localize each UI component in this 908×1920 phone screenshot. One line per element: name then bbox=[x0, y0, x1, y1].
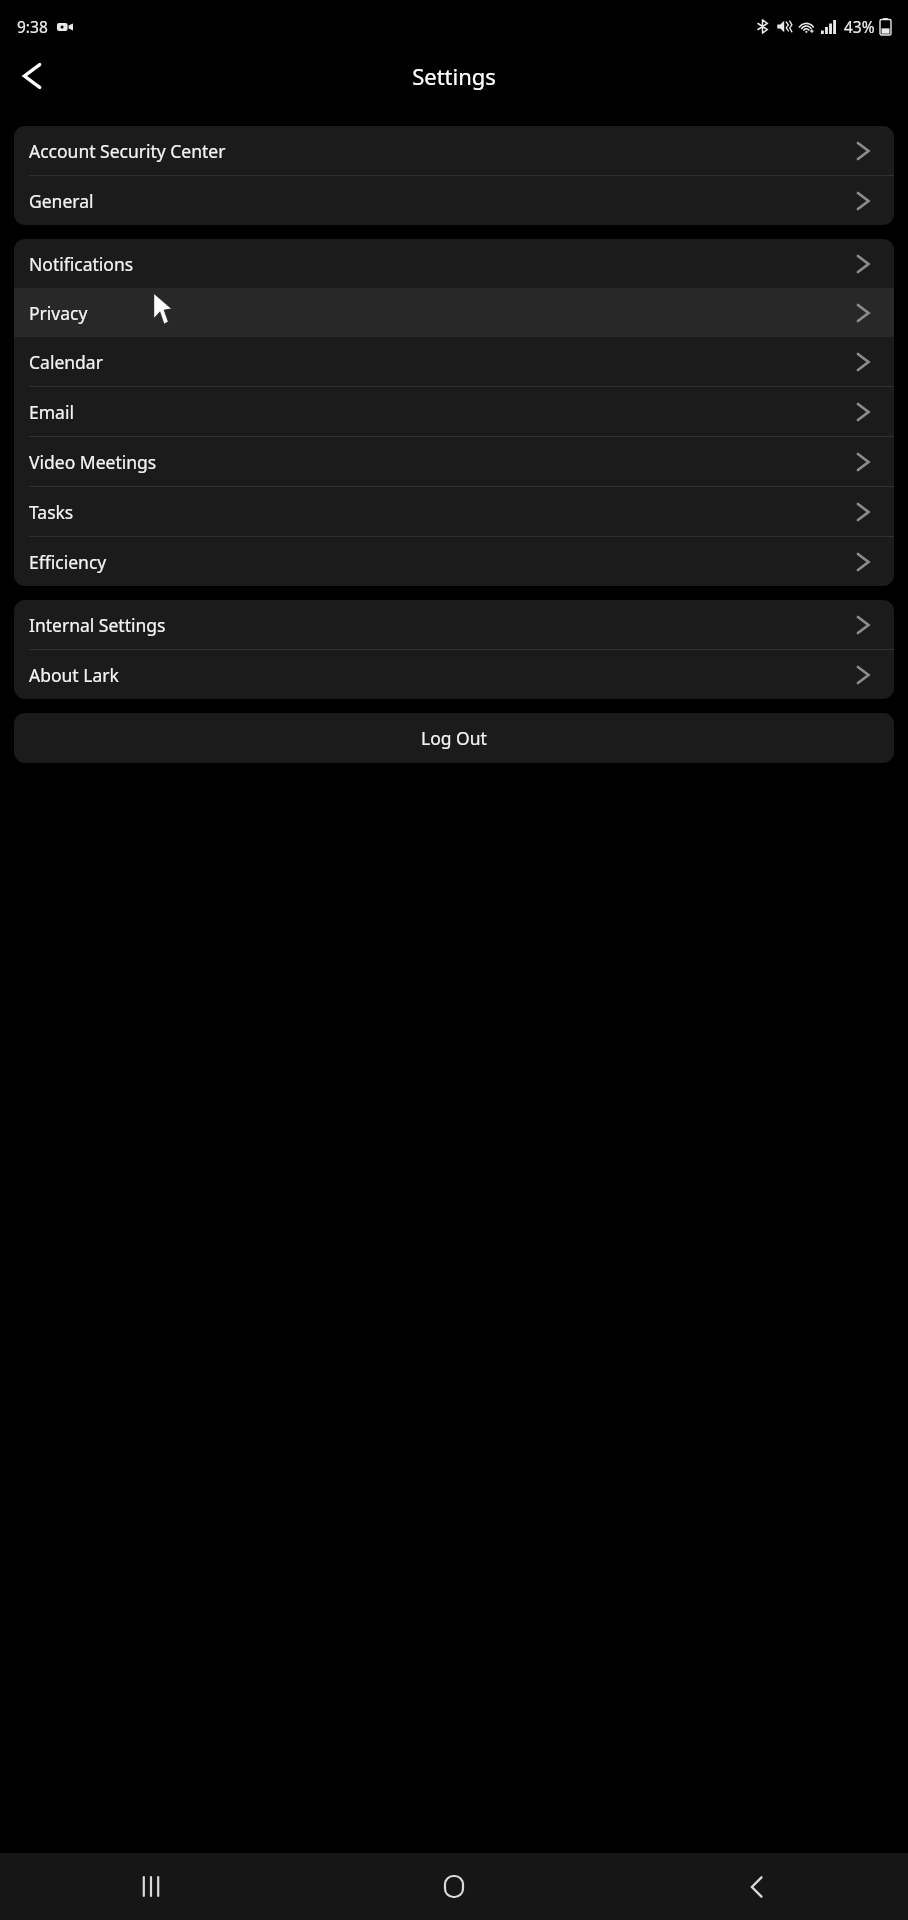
button[interactable]: About Lark bbox=[14, 650, 894, 699]
staticText: Video Meetings bbox=[29, 450, 848, 474]
button[interactable]: Back bbox=[5, 50, 57, 102]
staticText: Account Security Center bbox=[29, 139, 848, 163]
button[interactable]: Email bbox=[14, 387, 894, 436]
button[interactable]: General bbox=[14, 176, 894, 225]
button[interactable]: Back bbox=[605, 1853, 908, 1920]
staticText: 9:38 bbox=[17, 16, 48, 37]
button[interactable]: Internal Settings bbox=[14, 600, 894, 649]
staticText: Settings bbox=[412, 61, 496, 91]
staticText: 43% bbox=[844, 16, 875, 37]
button[interactable]: Tasks bbox=[14, 487, 894, 536]
button[interactable]: Privacy bbox=[14, 288, 894, 337]
button[interactable]: Efficiency bbox=[14, 537, 894, 586]
staticText: General bbox=[29, 189, 848, 213]
button[interactable]: Recent apps bbox=[0, 1853, 302, 1920]
button[interactable]: Video Meetings bbox=[14, 437, 894, 486]
staticText: Notifications bbox=[29, 252, 848, 276]
staticText: About Lark bbox=[29, 663, 848, 687]
staticText: Tasks bbox=[29, 500, 848, 524]
staticText: Internal Settings bbox=[29, 613, 848, 637]
button[interactable]: Notifications bbox=[14, 239, 894, 288]
staticText: Privacy bbox=[29, 301, 848, 325]
button[interactable]: Log Out bbox=[14, 713, 894, 763]
staticText: Email bbox=[29, 400, 848, 424]
button[interactable]: Calendar bbox=[14, 337, 894, 386]
button[interactable]: Home bbox=[302, 1853, 605, 1920]
staticText: Calendar bbox=[29, 350, 848, 374]
button[interactable]: Account Security Center bbox=[14, 126, 894, 175]
staticText: Log Out bbox=[421, 726, 487, 750]
staticText: Efficiency bbox=[29, 550, 848, 574]
